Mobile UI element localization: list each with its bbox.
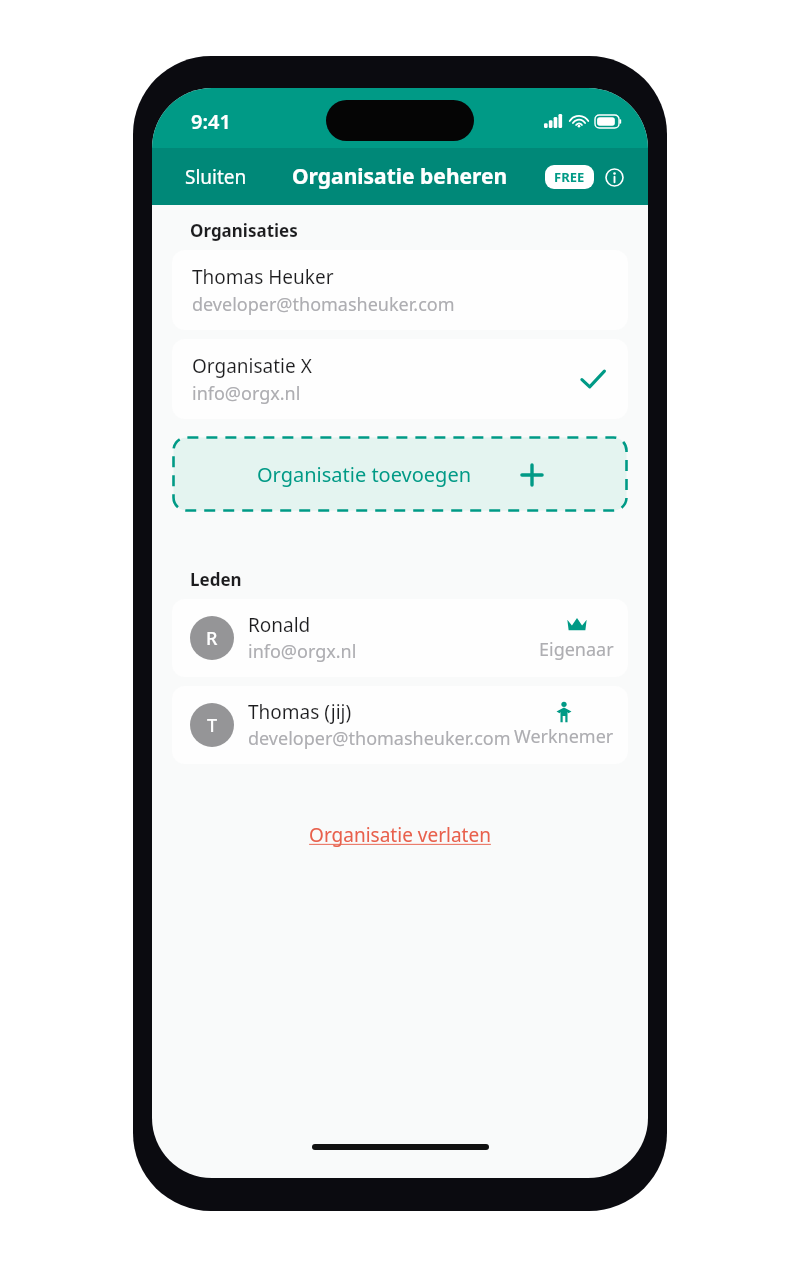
staticText: Organisatie beheren [292,162,508,191]
staticText: Werknemer [514,724,614,749]
staticText: Organisatie verlaten [309,822,491,848]
staticText: developer@thomasheuker.com [248,726,511,751]
staticText: 9:41 [191,108,231,135]
staticText: info@orgx.nl [248,639,357,664]
staticText: Thomas Heuker [192,264,334,290]
staticText: Ronald [248,612,311,638]
button[interactable]: FREE [545,165,594,189]
button[interactable]: R [172,599,628,677]
button[interactable]: Organisatie verlaten [293,816,507,854]
staticText: info@orgx.nl [192,381,301,406]
button[interactable]: Sluiten [152,156,259,198]
staticText: Thomas (jij) [248,699,352,725]
staticText: Sluiten [185,164,247,190]
other: Geselecteerd [578,364,608,394]
staticText: FREE [554,168,585,186]
button[interactable]: Thomas Heuker [172,250,628,330]
staticText: Organisatie toevoegen [257,461,472,488]
button[interactable]: Informatie [601,164,627,190]
staticText: T [207,713,218,738]
staticText: Organisaties [190,219,298,242]
staticText: R [206,626,218,651]
staticText: Organisatie X [192,353,312,379]
button[interactable]: Organisatie X [172,339,628,419]
staticText: Leden [190,568,242,591]
button[interactable]: Organisatie toevoegen [172,436,628,512]
staticText: Eigenaar [539,637,614,662]
button[interactable]: T [172,686,628,764]
staticText: developer@thomasheuker.com [192,292,455,317]
